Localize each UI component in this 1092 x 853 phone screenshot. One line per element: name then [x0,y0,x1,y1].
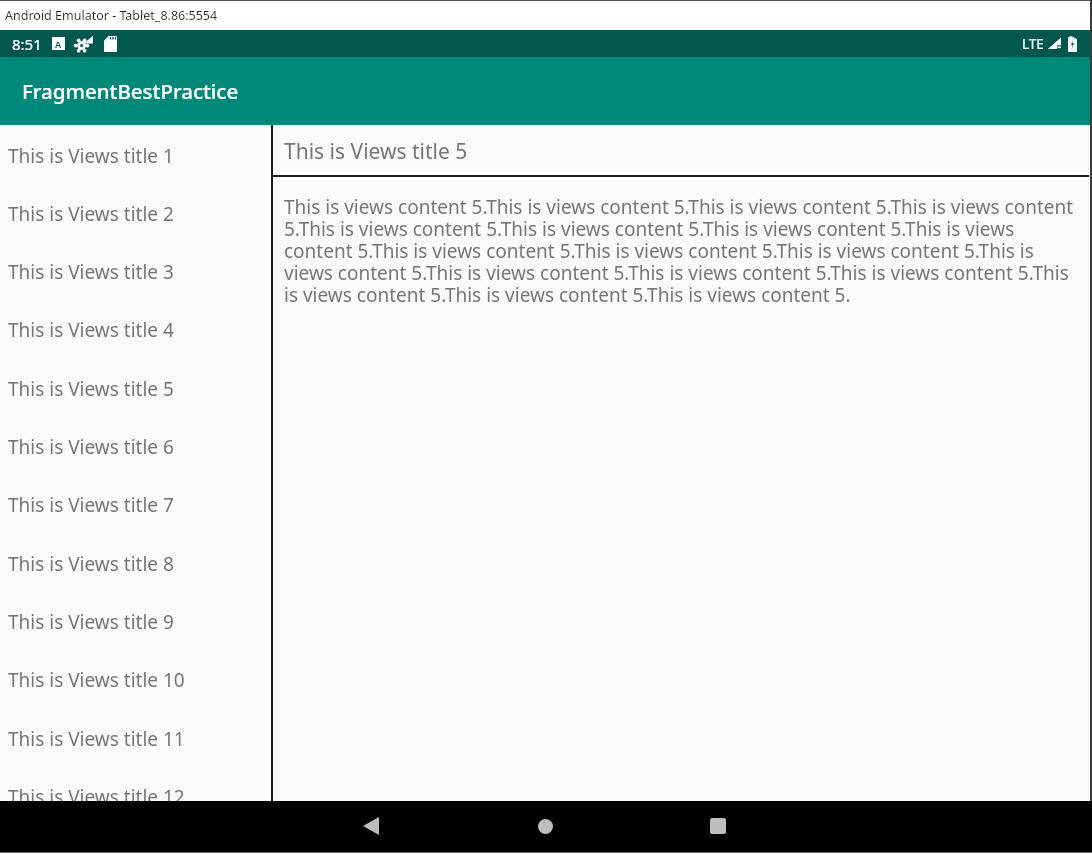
staticText: Android Emulator - Tablet_8.86:5554 [5,7,218,24]
button[interactable]: Recents [694,802,742,850]
button[interactable]: This is Views title 4 [0,301,271,359]
staticText: This is Views title 12 [8,784,185,801]
staticText: This is Views title 5 [8,376,174,402]
staticText: This is Views title 1 [8,143,174,169]
button[interactable]: This is Views title 8 [0,535,271,593]
button[interactable]: This is Views title 5 [0,360,271,418]
button[interactable]: This is Views title 3 [0,243,271,301]
staticText: This is Views title 7 [8,492,174,518]
button[interactable]: This is Views title 11 [0,710,271,768]
button[interactable]: This is Views title 10 [0,651,271,709]
button[interactable]: This is Views title 9 [0,593,271,651]
staticText: This is Views title 10 [8,667,185,693]
staticText: This is Views title 9 [8,609,174,635]
staticText: This is Views title 3 [8,259,174,285]
staticText: This is Views title 11 [8,726,185,752]
button[interactable]: This is Views title 12 [0,768,271,801]
staticText: LTE [1022,35,1044,53]
staticText: This is Views title 6 [8,434,174,460]
button[interactable]: This is Views title 2 [0,185,271,243]
staticText: This is Views title 4 [8,317,174,343]
staticText: This is Views title 8 [8,551,174,577]
button[interactable]: Home [521,802,569,850]
staticText: 8:51 [12,34,42,54]
button[interactable]: Back [347,802,395,850]
staticText: This is views content 5.This is views co… [284,194,1078,308]
button[interactable]: This is Views title 7 [0,476,271,534]
staticText: This is Views title 2 [8,201,174,227]
button[interactable]: This is Views title 6 [0,418,271,476]
staticText: A [55,38,62,50]
button[interactable]: This is Views title 1 [0,127,271,185]
staticText: FragmentBestPractice [22,77,239,105]
staticText: This is Views title 5 [284,137,468,166]
